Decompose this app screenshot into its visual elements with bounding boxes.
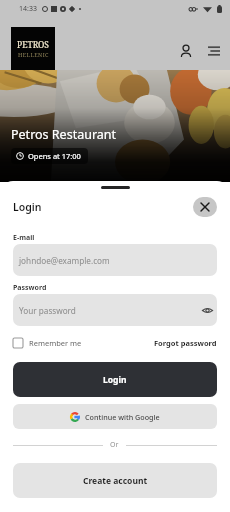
staticText: Remember me — [29, 338, 82, 348]
button[interactable]: Login — [13, 362, 217, 397]
staticText: 14:33 — [19, 4, 37, 14]
button[interactable]: johndoe@example.com — [13, 244, 217, 276]
staticText: Or — [110, 440, 119, 450]
staticText: Password — [13, 283, 47, 293]
staticText: Your password — [19, 305, 76, 316]
staticText: Opens at 17:00 — [28, 151, 81, 161]
staticText: Login — [103, 374, 127, 386]
staticText: Continue with Google — [85, 412, 160, 422]
staticText: johndoe@example.com — [19, 255, 110, 266]
staticText: HELLENIC — [18, 51, 49, 58]
staticText: PETROS — [17, 39, 49, 51]
button[interactable]: Create account — [13, 463, 217, 498]
staticText: Petros Restaurant — [11, 126, 117, 143]
button[interactable]: Remember me — [13, 338, 84, 348]
staticText: Forgot password — [154, 338, 217, 348]
button[interactable]: Petros Hellenic logo — [11, 27, 55, 70]
staticText: E-mail — [13, 233, 35, 243]
button[interactable]: Close — [193, 197, 217, 217]
staticText: Login — [13, 200, 42, 214]
button[interactable]: Continue with Google — [13, 404, 217, 429]
staticText: Create account — [83, 475, 148, 487]
button[interactable]: Show password — [201, 304, 213, 316]
button[interactable]: Forgot password — [154, 338, 217, 348]
button[interactable]: Menu — [204, 41, 224, 61]
button[interactable]: Account — [176, 41, 196, 61]
button[interactable]: Your password — [13, 294, 217, 326]
